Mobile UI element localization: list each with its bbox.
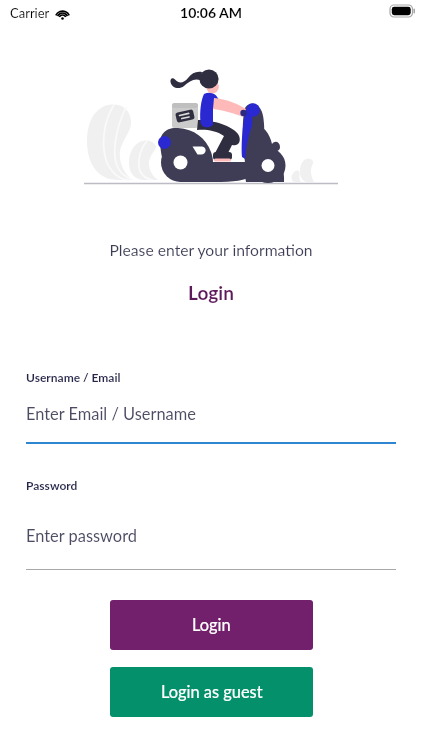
staticText: Please enter your information <box>0 241 422 260</box>
other: Wifi <box>55 7 70 20</box>
staticText: Password <box>26 478 78 492</box>
button[interactable]: Login <box>110 600 313 650</box>
staticText: Username / Email <box>26 370 121 384</box>
staticText: Enter Email / Username <box>26 404 196 424</box>
other: Battery <box>390 5 415 17</box>
staticText: Carrier <box>10 5 50 21</box>
staticText: Login <box>0 281 422 304</box>
staticText: Enter password <box>26 526 137 546</box>
button[interactable]: Login as guest <box>110 667 313 717</box>
staticText: Login <box>192 615 231 635</box>
staticText: Login as guest <box>161 682 263 702</box>
staticText: 10:06 AM <box>0 4 422 21</box>
